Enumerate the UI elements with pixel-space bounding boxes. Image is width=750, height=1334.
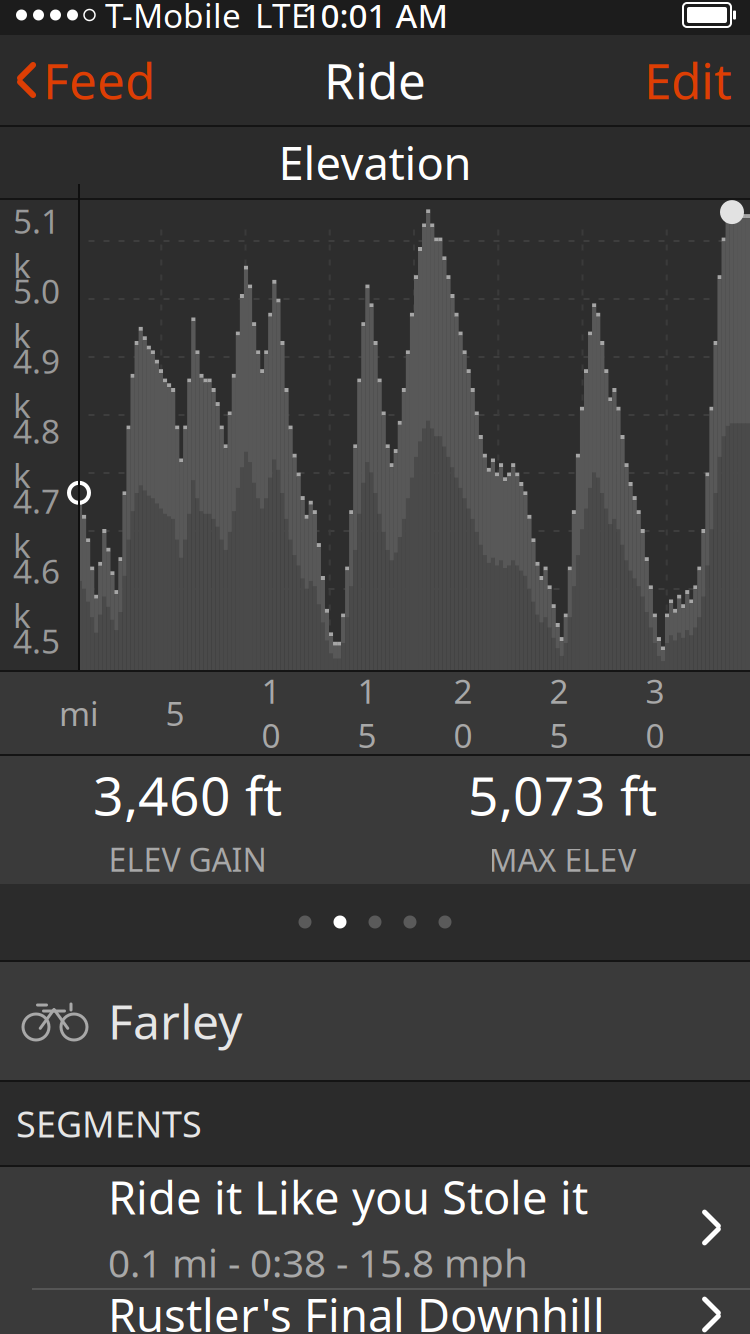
button[interactable]: Rustler's Final Downhill — [0, 1284, 750, 1334]
staticText: LTE — [255, 0, 310, 37]
button[interactable]: Edit — [644, 33, 750, 127]
button[interactable]: Feed — [0, 33, 155, 127]
staticText: 15 — [357, 669, 376, 757]
staticText: 0.1 mi - 0:38 - 15.8 mph — [108, 1237, 528, 1288]
staticText: Ride — [324, 47, 426, 113]
staticText: Rustler's Final Downhill — [108, 1284, 605, 1334]
staticText: 4.5k — [13, 619, 60, 707]
staticText: ELEV GAIN — [108, 838, 266, 881]
staticText: 4.6k — [13, 549, 60, 637]
staticText: 10:01 AM — [301, 0, 448, 37]
staticText: 5,073 ft — [468, 759, 657, 830]
staticText: 3,460 ft — [93, 759, 282, 830]
staticText: MAX ELEV — [488, 838, 636, 881]
staticText: mi — [59, 691, 99, 735]
staticText: Farley — [108, 989, 242, 1053]
staticText: 20 — [453, 669, 472, 757]
staticText: 4.8k — [13, 409, 60, 497]
staticText: 5 — [165, 691, 184, 735]
staticText: 4.9k — [13, 339, 60, 427]
staticText: 30 — [645, 669, 664, 757]
staticText: Elevation — [278, 132, 471, 193]
staticText: SEGMENTS — [16, 1100, 202, 1147]
staticText: 25 — [549, 669, 568, 757]
staticText: 5.0k — [13, 269, 60, 357]
staticText: 10 — [261, 669, 280, 757]
staticText: Ride it Like you Stole it — [108, 1167, 588, 1227]
staticText: Edit — [644, 47, 732, 113]
button[interactable]: Farley — [0, 962, 750, 1080]
staticText: 5.1k — [13, 199, 60, 287]
button[interactable]: Ride it Like you Stole it — [0, 1167, 750, 1288]
staticText: T-Mobile — [105, 0, 241, 37]
staticText: 4.7k — [13, 479, 60, 567]
staticText: Feed — [43, 47, 155, 113]
